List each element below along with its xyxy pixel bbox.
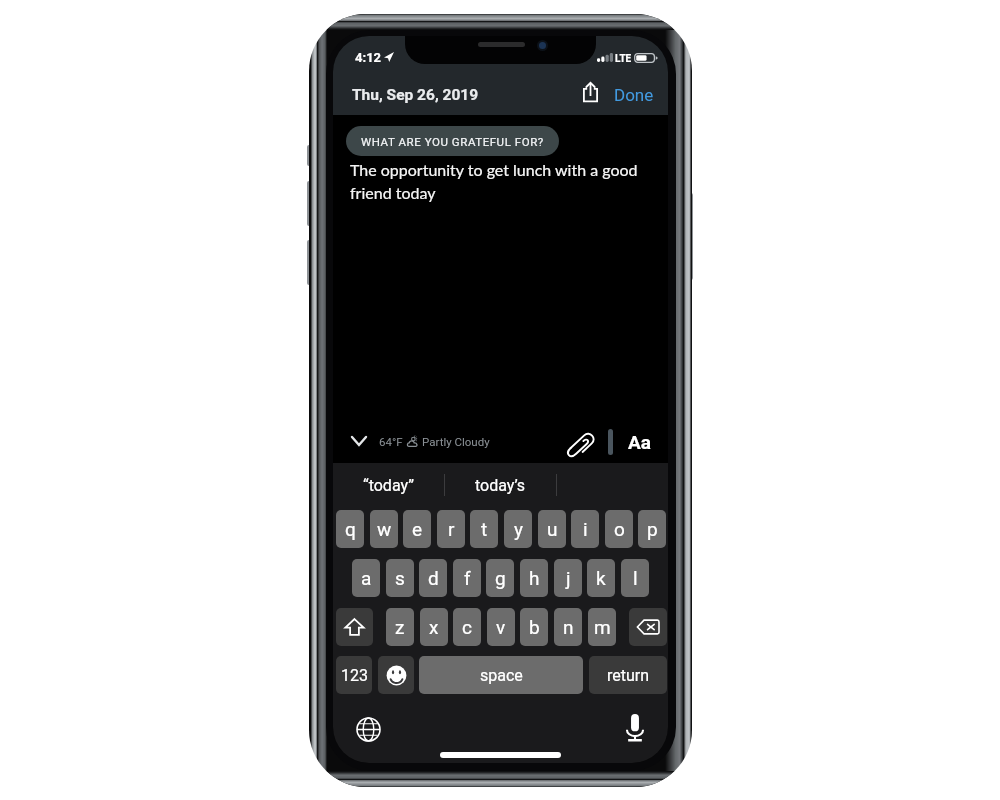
staticText: Partly Cloudy	[422, 435, 490, 448]
button[interactable]: i	[571, 510, 599, 548]
staticText: x	[429, 616, 439, 638]
button[interactable]: f	[453, 559, 481, 597]
button[interactable]: Share	[571, 73, 609, 111]
staticText: u	[547, 518, 558, 540]
staticText: z	[395, 616, 405, 638]
button[interactable]: a	[352, 559, 380, 597]
button[interactable]: 123	[336, 656, 372, 694]
staticText: 123	[341, 666, 368, 685]
staticText: r	[448, 518, 455, 540]
staticText: v	[496, 616, 506, 638]
staticText: k	[596, 567, 606, 589]
button[interactable]: p	[638, 510, 666, 548]
button[interactable]: w	[370, 510, 398, 548]
staticText: WHAT ARE YOU GRATEFUL FOR?	[361, 135, 544, 148]
button[interactable]: s	[386, 559, 414, 597]
button[interactable]: b	[520, 608, 548, 646]
staticText: e	[412, 518, 423, 540]
button[interactable]: o	[605, 510, 633, 548]
staticText: d	[428, 567, 439, 589]
button[interactable]: Shift	[336, 608, 373, 646]
staticText: c	[462, 616, 472, 638]
button[interactable]: e	[403, 510, 431, 548]
staticText: Aa	[628, 431, 651, 453]
button[interactable]: today’s	[445, 463, 556, 507]
staticText: i	[583, 518, 588, 540]
staticText: a	[361, 567, 372, 589]
staticText: t	[481, 518, 488, 540]
button[interactable]: space	[419, 656, 583, 694]
staticText: f	[464, 567, 471, 589]
staticText: w	[377, 518, 392, 540]
button[interactable]: c	[453, 608, 481, 646]
button[interactable]: k	[587, 559, 615, 597]
button[interactable]: Collapse	[344, 426, 374, 456]
button[interactable]: “today”	[333, 463, 444, 507]
staticText: The opportunity to get lunch with a good…	[350, 160, 648, 202]
staticText: 4:12	[355, 50, 382, 65]
button[interactable]: x	[420, 608, 448, 646]
button[interactable]: Dictate	[617, 710, 653, 746]
button[interactable]: h	[520, 559, 548, 597]
button[interactable]: return	[589, 656, 667, 694]
staticText: h	[529, 567, 540, 589]
button[interactable]: z	[386, 608, 414, 646]
staticText: o	[614, 518, 625, 540]
staticText: “today”	[363, 476, 414, 495]
button[interactable]: t	[470, 510, 498, 548]
button[interactable]: r	[437, 510, 465, 548]
staticText: space	[480, 666, 523, 685]
staticText: l	[633, 567, 638, 589]
button[interactable]: WHAT ARE YOU GRATEFUL FOR?	[346, 126, 559, 156]
staticText: s	[395, 567, 405, 589]
button[interactable]: Emoji	[378, 656, 414, 694]
staticText: n	[563, 616, 574, 638]
staticText: p	[647, 518, 658, 540]
button[interactable]: n	[554, 608, 582, 646]
button[interactable]: Attach	[564, 426, 600, 462]
button[interactable]: d	[419, 559, 447, 597]
button[interactable]: l	[621, 559, 649, 597]
button[interactable]: m	[588, 608, 616, 646]
button[interactable]: v	[487, 608, 515, 646]
staticText: q	[345, 518, 356, 540]
button[interactable]: g	[486, 559, 514, 597]
staticText: return	[607, 666, 650, 685]
button[interactable]: q	[336, 510, 364, 548]
button[interactable]: Done	[605, 80, 663, 110]
staticText: g	[495, 567, 506, 589]
staticText: today’s	[475, 476, 526, 495]
button[interactable]: Backspace	[629, 608, 667, 646]
staticText: b	[529, 616, 540, 638]
staticText: y	[514, 518, 523, 540]
staticText: Done	[614, 85, 654, 105]
staticText: LTE	[615, 53, 632, 65]
button[interactable]: j	[554, 559, 582, 597]
staticText: j	[566, 567, 571, 589]
staticText: m	[594, 616, 611, 638]
button[interactable]: Switch keyboard	[350, 711, 386, 747]
staticText: Thu, Sep 26, 2019	[352, 86, 479, 104]
button[interactable]: y	[504, 510, 532, 548]
staticText: 64°F	[379, 435, 403, 448]
button[interactable]: u	[538, 510, 566, 548]
button[interactable]: Text format	[621, 426, 657, 458]
